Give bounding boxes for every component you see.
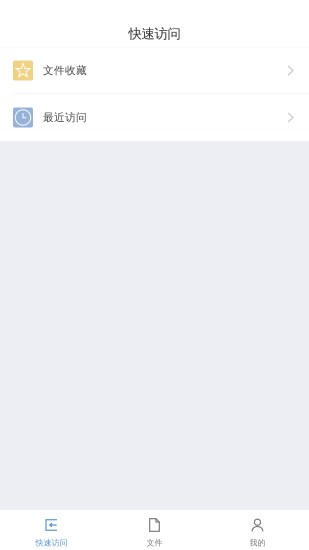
button[interactable]: 快速访问 [0,510,103,550]
staticText: 最近访问 [43,111,87,124]
button[interactable]: 我的 [206,510,309,550]
staticText: 我的 [249,538,265,548]
button[interactable]: 最近访问 [0,94,309,141]
button[interactable]: 文件收藏 [0,48,309,94]
button[interactable]: 文件 [103,510,206,550]
staticText: 快速访问 [128,26,180,42]
staticText: 文件收藏 [43,64,87,77]
staticText: 文件 [146,538,162,548]
staticText: 快速访问 [35,538,67,548]
